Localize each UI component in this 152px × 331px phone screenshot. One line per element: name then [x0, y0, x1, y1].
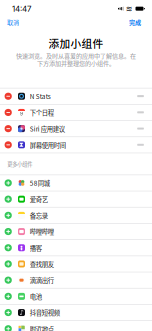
staticText: 哔哩哔哩 — [30, 227, 54, 236]
staticText: N Stats — [30, 92, 51, 101]
button[interactable]: 58同城 — [0, 175, 152, 191]
staticText: 14:47 — [12, 4, 32, 14]
staticText: Siri 应用建议 — [30, 124, 65, 133]
staticText: 添加小组件 — [48, 35, 103, 51]
button[interactable]: 查找朋友 — [0, 256, 152, 272]
button[interactable]: 哔哩哔哩 — [0, 224, 152, 240]
button[interactable]: 播客 — [0, 240, 152, 256]
staticText: 播客 — [30, 243, 42, 252]
button[interactable]: 滴滴出行 — [0, 272, 152, 289]
staticText: 备忘录 — [30, 211, 48, 220]
staticText: 取消 — [7, 18, 19, 26]
staticText: 快速浏览。及时从喜爱的应用中了解信息。在 — [16, 51, 136, 60]
staticText: 下个日程 — [30, 108, 54, 117]
staticText: 滴滴出行 — [30, 275, 54, 285]
staticText: 58同城 — [30, 178, 50, 188]
staticText: 爱奇艺 — [30, 194, 48, 204]
staticText: 电池 — [30, 292, 42, 301]
button[interactable]: Siri 应用建议 — [0, 121, 152, 137]
button[interactable]: 附近地点 — [0, 321, 152, 331]
staticText: ⧗ — [19, 141, 24, 148]
staticText: 9 — [20, 111, 23, 117]
staticText: ♪ — [19, 309, 23, 316]
staticText: 附近地点 — [30, 324, 54, 331]
button[interactable]: 取消 — [7, 16, 27, 28]
staticText: 抖音短视频 — [30, 308, 60, 317]
button[interactable]: 完成 — [121, 16, 141, 28]
staticText: ≋ — [126, 4, 133, 13]
staticText: 更多小组件 — [7, 160, 32, 168]
button[interactable]: 9 — [0, 105, 152, 121]
button[interactable]: N Stats — [0, 88, 152, 105]
button[interactable]: 备忘录 — [0, 208, 152, 224]
staticText: 屏幕使用时间 — [30, 140, 66, 149]
button[interactable]: ⧗ — [0, 137, 152, 153]
staticText: 下方添加并整理您的小组件。 — [37, 59, 115, 68]
button[interactable]: 爱奇艺 — [0, 191, 152, 208]
staticText: 完成 — [129, 18, 141, 26]
button[interactable]: 电池 — [0, 289, 152, 305]
button[interactable]: ♪ — [0, 305, 152, 321]
staticText: 查找朋友 — [30, 259, 54, 269]
